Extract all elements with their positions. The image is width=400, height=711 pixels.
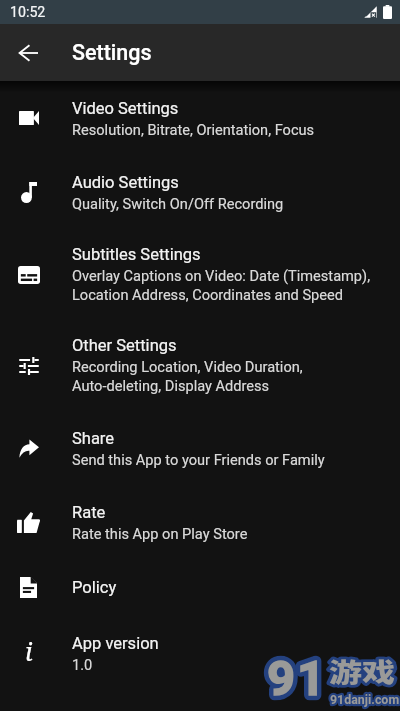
button[interactable]: Navigate up xyxy=(6,31,50,75)
staticText: Settings xyxy=(72,40,152,65)
staticText: App version xyxy=(72,634,159,653)
staticText: Rate this App on Play Store xyxy=(72,525,248,542)
staticText: 游戏 xyxy=(329,652,395,690)
button[interactable]: Rate xyxy=(0,485,400,559)
staticText: 游戏 xyxy=(329,652,395,690)
staticText: Send this App to your Friends or Family xyxy=(72,451,325,468)
staticText: Video Settings xyxy=(72,99,179,118)
staticText: i xyxy=(25,634,33,668)
staticText: 91danji.com xyxy=(330,692,400,707)
staticText: 91danji.com xyxy=(330,692,400,707)
staticText: Subtitles Settings xyxy=(72,245,201,264)
button[interactable]: Other Settings xyxy=(0,320,400,411)
staticText: Policy xyxy=(72,578,117,597)
staticText: Recording Location, Video Duration, Auto… xyxy=(72,358,303,395)
button[interactable]: i xyxy=(0,616,400,690)
staticText: Overlay Captions on Video: Date (Timesta… xyxy=(72,267,371,304)
staticText: Share xyxy=(72,429,115,448)
button[interactable]: Share xyxy=(0,411,400,485)
staticText: Audio Settings xyxy=(72,173,179,192)
staticText: Resolution, Bitrate, Orientation, Focus xyxy=(72,121,315,138)
staticText: 91 xyxy=(267,650,328,707)
button[interactable]: Video Settings xyxy=(0,81,400,155)
button[interactable]: Audio Settings xyxy=(0,155,400,229)
button[interactable]: Subtitles Settings xyxy=(0,229,400,320)
staticText: 10:52 xyxy=(10,4,46,21)
button[interactable]: Policy xyxy=(0,559,400,616)
staticText: 91 xyxy=(267,650,328,707)
staticText: Rate xyxy=(72,503,106,522)
staticText: Quality, Switch On/Off Recording xyxy=(72,195,284,212)
staticText: 1.0 xyxy=(72,656,93,673)
staticText: Other Settings xyxy=(72,336,177,355)
